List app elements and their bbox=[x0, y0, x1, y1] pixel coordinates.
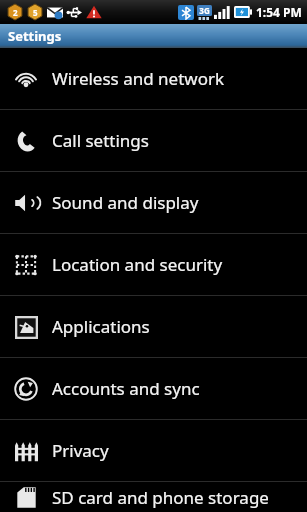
staticText: Call settings bbox=[52, 129, 149, 152]
staticText: Privacy bbox=[52, 439, 109, 462]
button[interactable]: Sound and display bbox=[0, 172, 307, 233]
staticText: SD card and phone storage bbox=[52, 486, 269, 509]
staticText: 5 bbox=[33, 7, 38, 18]
staticText: Location and security bbox=[52, 253, 223, 276]
staticText: Sound and display bbox=[52, 191, 199, 214]
staticText: 3G bbox=[199, 5, 210, 16]
staticText: Applications bbox=[52, 315, 150, 338]
staticText: Settings bbox=[8, 27, 62, 45]
button[interactable]: Accounts and sync bbox=[0, 358, 307, 419]
button[interactable]: Location and security bbox=[0, 234, 307, 295]
staticText: Accounts and sync bbox=[52, 377, 200, 400]
staticText: Wireless and network bbox=[52, 67, 225, 90]
staticText: 2 bbox=[13, 7, 18, 18]
staticText: 1:54 PM bbox=[256, 4, 302, 20]
button[interactable]: SD card and phone storage bbox=[0, 482, 307, 512]
button[interactable]: Privacy bbox=[0, 420, 307, 481]
button[interactable]: Wireless and network bbox=[0, 48, 307, 109]
button[interactable]: Call settings bbox=[0, 110, 307, 171]
button[interactable]: Applications bbox=[0, 296, 307, 357]
